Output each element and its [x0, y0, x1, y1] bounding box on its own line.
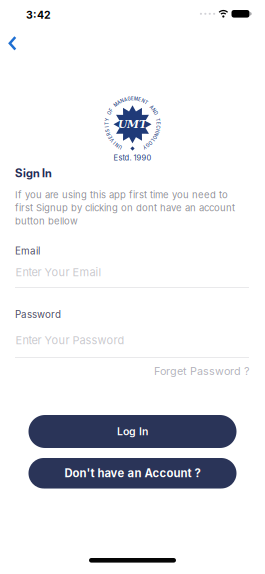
staticText: F	[110, 107, 113, 113]
staticText: N	[116, 142, 119, 148]
staticText: Estd. 1990	[113, 153, 151, 162]
staticText: If you are using this app first time you…	[15, 189, 228, 200]
staticText: O	[153, 134, 156, 140]
staticText: E	[131, 96, 134, 101]
button[interactable]: Back	[0, 36, 265, 51]
staticText: Y	[143, 144, 146, 149]
staticText: I	[106, 124, 107, 130]
staticText: Log In	[117, 425, 148, 438]
staticText	[113, 104, 114, 110]
button[interactable]: Forget Password ?	[0, 364, 265, 378]
staticText: D	[154, 110, 157, 116]
button[interactable]: Don't have an Account ?	[28, 458, 236, 488]
staticText: L	[152, 137, 154, 143]
staticText: E	[138, 97, 141, 102]
staticText: C	[156, 124, 159, 130]
staticText: M	[114, 102, 118, 107]
staticText: H	[156, 128, 159, 133]
staticText: UMT	[118, 118, 147, 131]
staticText: Don't have an Account ?	[64, 466, 200, 480]
staticText	[156, 114, 157, 119]
staticText: T	[156, 117, 159, 122]
staticText: first Signup by clicking on dont have an…	[15, 202, 235, 214]
staticText: Y	[106, 117, 109, 122]
staticText: N	[155, 131, 158, 136]
button[interactable]: Log In	[28, 415, 236, 448]
staticText: A	[117, 100, 120, 105]
staticText: O	[108, 110, 111, 116]
staticText: Email	[15, 245, 40, 257]
staticText: S	[106, 128, 109, 133]
staticText: Sign In	[15, 166, 52, 180]
staticText: G	[127, 96, 130, 102]
staticText: T	[145, 100, 148, 105]
staticText: Enter Your Password	[15, 333, 124, 347]
staticText: 3:42	[26, 8, 51, 21]
staticText: A	[150, 104, 153, 110]
staticText: N	[152, 107, 155, 113]
staticText	[108, 114, 109, 119]
staticText: N	[121, 98, 124, 104]
staticText: E	[109, 134, 112, 140]
staticText: T	[105, 121, 108, 126]
staticText: A	[124, 97, 127, 102]
staticText: R	[107, 131, 110, 136]
staticText: N	[141, 98, 144, 104]
staticText: M	[134, 96, 138, 102]
staticText: button bellow	[15, 215, 78, 227]
staticText: O	[149, 140, 152, 145]
staticText: E	[157, 121, 160, 126]
staticText: I	[114, 140, 115, 145]
staticText: Enter Your Email	[15, 265, 101, 279]
staticText: U	[119, 144, 122, 149]
staticText: Password	[15, 308, 61, 320]
staticText: Forget Password ?	[154, 364, 250, 378]
staticText: V	[111, 137, 114, 143]
staticText: G	[146, 142, 149, 148]
